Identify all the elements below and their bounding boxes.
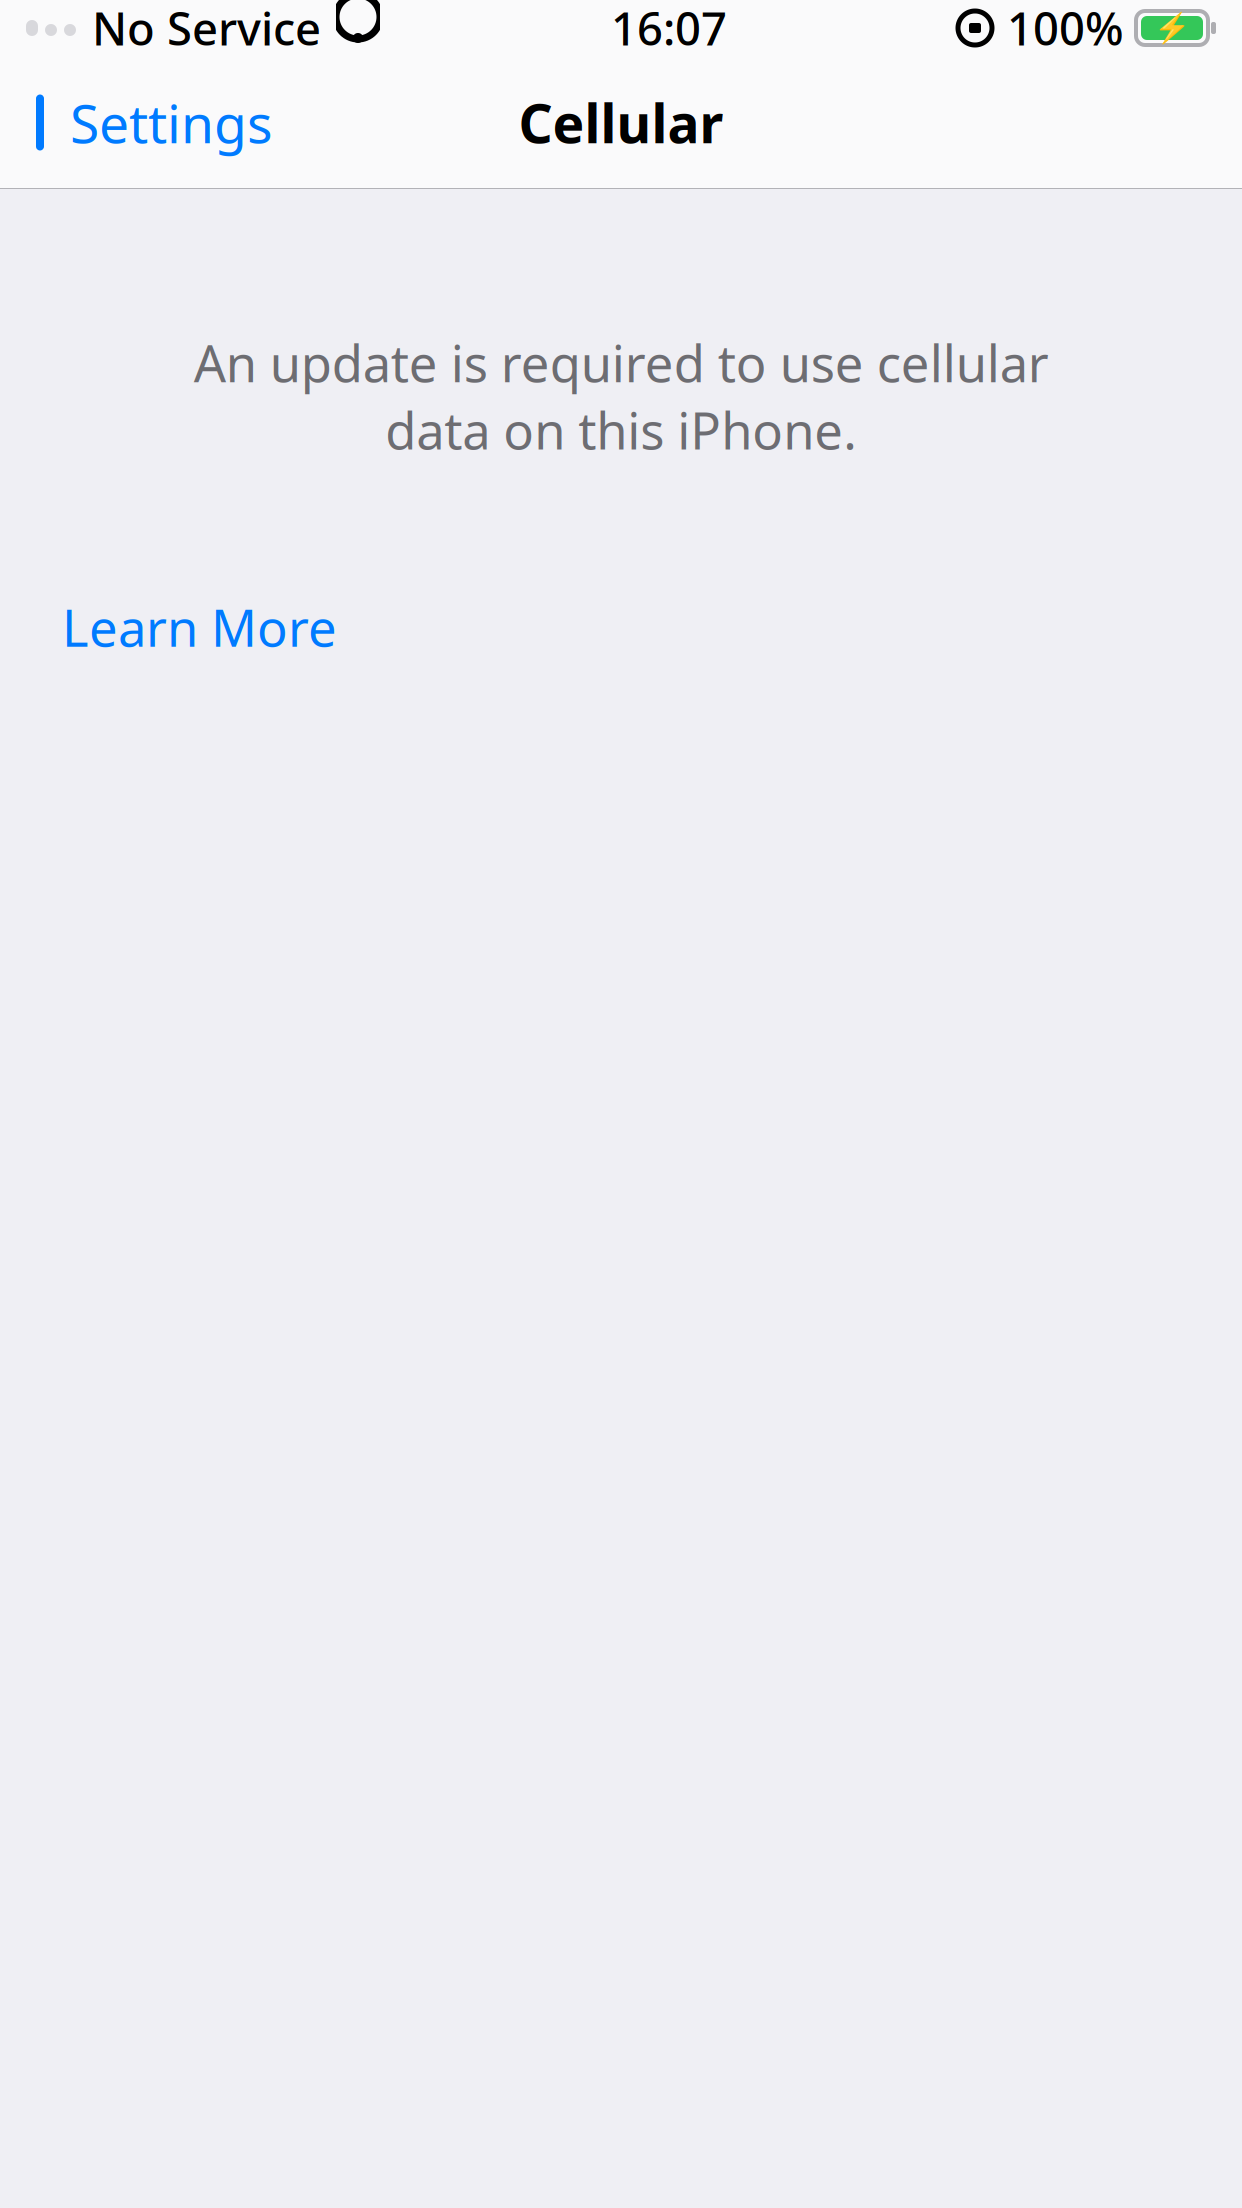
button[interactable]: Settings (0, 62, 291, 182)
staticText: ⚡ (1153, 11, 1190, 45)
staticText: 100% (1007, 0, 1124, 58)
button[interactable]: Learn More (0, 574, 367, 681)
staticText: Learn More (62, 594, 337, 661)
staticText: An update is required to use cellular da… (193, 329, 1048, 464)
staticText: Settings (70, 87, 273, 158)
staticText: No Service (92, 0, 321, 58)
staticText: 16:07 (611, 0, 727, 58)
staticText: Cellular (518, 87, 723, 158)
